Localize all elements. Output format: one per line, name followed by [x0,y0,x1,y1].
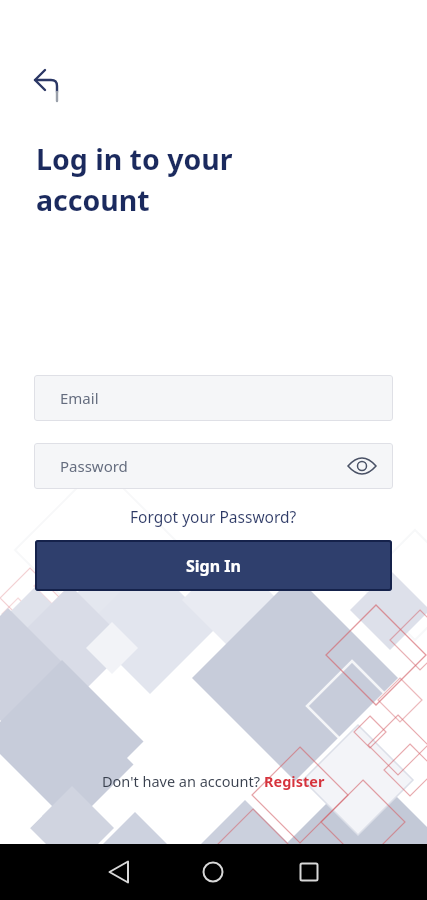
button[interactable]: Sign In [35,540,392,591]
button[interactable]: Email [34,375,393,421]
staticText: Log in to your account [36,140,233,220]
staticText: Sign In [186,555,241,577]
staticText: Don't have an account? [102,771,264,791]
button[interactable]: Register [264,771,325,791]
button[interactable] [28,58,68,98]
staticText: Password [60,456,128,476]
button[interactable] [105,858,133,886]
button[interactable] [295,858,323,886]
button[interactable]: Forgot your Password? [130,506,297,527]
button[interactable] [347,451,377,481]
button[interactable]: Password [34,443,393,489]
button[interactable] [199,858,227,886]
staticText: Email [60,388,99,408]
